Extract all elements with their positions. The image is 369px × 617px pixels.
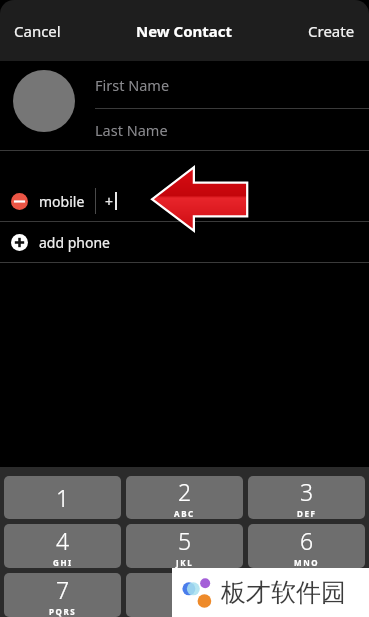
button[interactable]: First Name xyxy=(95,61,369,108)
button[interactable]: Cancel xyxy=(4,13,71,49)
staticText: 7 xyxy=(56,574,70,605)
staticText: 9 xyxy=(300,574,314,605)
staticText: + xyxy=(105,192,114,211)
staticText: 1 xyxy=(56,482,70,513)
staticText: Create xyxy=(308,21,355,41)
staticText: New Contact xyxy=(136,21,233,41)
button[interactable]: 5 xyxy=(126,524,243,568)
staticText: add phone xyxy=(39,233,110,252)
staticText: mobile xyxy=(39,192,85,211)
button[interactable]: 4 xyxy=(4,524,121,568)
button[interactable]: Create xyxy=(298,13,365,49)
staticText: JKL xyxy=(176,557,194,568)
staticText: 8 xyxy=(178,574,192,605)
staticText: 3 xyxy=(300,476,314,507)
staticText: Last Name xyxy=(95,120,168,140)
staticText: 2 xyxy=(178,476,192,507)
staticText: DEF xyxy=(297,508,317,519)
button[interactable]: add phone xyxy=(0,222,369,262)
staticText: Cancel xyxy=(14,21,61,41)
button[interactable]: 6 xyxy=(248,524,365,568)
button[interactable]: Add photo xyxy=(13,70,75,132)
staticText: First Name xyxy=(95,75,170,95)
button[interactable]: Last Name xyxy=(95,109,369,150)
staticText: PQRS xyxy=(49,606,77,617)
staticText: GHI xyxy=(53,557,73,568)
staticText: MNO xyxy=(294,557,320,568)
staticText: 5 xyxy=(178,525,192,556)
staticText: 4 xyxy=(56,525,70,556)
button[interactable]: Remove phone xyxy=(0,181,369,221)
button[interactable]: 1 xyxy=(4,476,121,519)
staticText: 6 xyxy=(300,525,314,556)
button[interactable]: 9 xyxy=(248,573,365,617)
button[interactable]: 3 xyxy=(248,476,365,519)
other: Remove phone xyxy=(11,193,28,210)
button[interactable]: 8 xyxy=(126,573,243,617)
staticText: ABC xyxy=(174,508,195,519)
button[interactable]: 2 xyxy=(126,476,243,519)
staticText: 板才软件园 xyxy=(221,577,346,608)
button[interactable]: 7 xyxy=(4,573,121,617)
